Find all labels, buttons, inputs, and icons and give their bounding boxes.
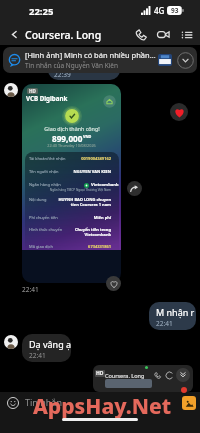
staticText: Tin nhắn (25, 396, 62, 408)
button[interactable]: Tin nhắn (25, 396, 62, 408)
staticText: 22:25 (29, 5, 54, 18)
staticText: 22:41 (29, 351, 46, 360)
staticText: 899,000 (52, 133, 83, 144)
button[interactable]: Options menu (176, 24, 197, 45)
staticText: HD (29, 88, 36, 94)
staticText: Ngân hàng TMCP Ngoại Thương Việt Nam (49, 188, 111, 192)
staticText: 22:40 Thursday 10/08/2026 (47, 143, 96, 148)
staticText: HUYNH BAO LONG chuyen tien Coursera 1 na… (55, 197, 111, 207)
button[interactable]: M nhận r (149, 302, 196, 330)
staticText: NGUYEN VAN KIEN (55, 169, 111, 174)
button[interactable]: Coursera. Long (25, 28, 102, 42)
staticText: Coursera. Long (105, 372, 145, 379)
staticText: [Hình ảnh] Mình có bán nhiều phần m... (25, 50, 156, 60)
button[interactable]: [Hình ảnh] Mình có bán nhiều phần m... (3, 47, 197, 73)
staticText: 6734331861 (55, 244, 111, 249)
staticText: Tài khoản/thẻ nhận (29, 156, 66, 161)
staticText: HD (96, 370, 104, 377)
staticText: VND (83, 134, 92, 139)
button[interactable]: Back (4, 24, 24, 44)
staticText: VCB Digibank (26, 94, 68, 102)
staticText: 22:41 (22, 285, 39, 294)
staticText: Hình thức chuyển (29, 227, 63, 232)
staticText: Ngân hàng nhận (29, 182, 61, 187)
staticText: Vietcombank (91, 182, 119, 188)
staticText: AppsHay.Net (33, 392, 172, 421)
button[interactable]: HD (93, 365, 193, 392)
staticText: Coursera. Long (25, 28, 102, 42)
button[interactable]: Send image (182, 396, 196, 410)
button[interactable]: Dạ vâng ạ (22, 334, 71, 362)
staticText: 22:41 (156, 319, 173, 328)
button[interactable]: Forward (127, 181, 142, 196)
staticText: Tên người nhận (29, 169, 59, 174)
button[interactable]: Minimize call (176, 368, 190, 382)
button[interactable]: React (106, 276, 121, 291)
button[interactable]: Heart reaction (170, 103, 188, 121)
staticText: Chuyển tiền trong Vietcombank (55, 227, 111, 237)
staticText: M nhận r (156, 306, 195, 318)
button[interactable]: Collapse pinned message (176, 51, 194, 69)
button[interactable]: Emoji (3, 393, 22, 412)
staticText: 4G (154, 5, 165, 16)
button[interactable]: HD (22, 84, 121, 283)
staticText: 93 (171, 6, 179, 15)
staticText: Mã giao dịch (29, 244, 53, 249)
button[interactable]: Voice call (130, 24, 151, 45)
staticText: 22:39 (54, 70, 71, 79)
staticText: Miễn phí (55, 215, 111, 220)
staticText: Giao dịch thành công! (44, 125, 100, 132)
staticText: Dạ vâng ạ (29, 338, 71, 350)
staticText: 0019004349162 (55, 156, 111, 161)
staticText: Nội dung (29, 197, 47, 202)
staticText: Phí chuyển tiền (29, 215, 58, 220)
button[interactable]: Video call (153, 24, 174, 45)
staticText: Tin nhắn của Nguyễn Văn Kiên (25, 61, 119, 70)
